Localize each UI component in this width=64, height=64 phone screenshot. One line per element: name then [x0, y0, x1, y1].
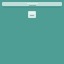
button[interactable]: Open tile: [28, 11, 36, 18]
button[interactable]: [2, 2, 62, 6]
